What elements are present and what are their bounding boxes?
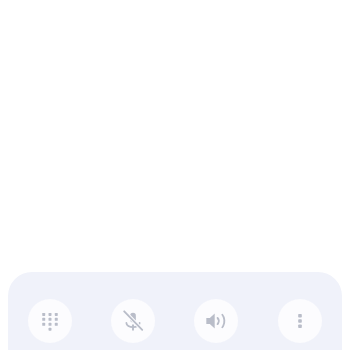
button[interactable]: More options (278, 299, 322, 343)
button[interactable]: Dialpad (28, 299, 72, 343)
button[interactable]: Mute microphone (111, 299, 155, 343)
button[interactable]: Speaker (194, 299, 238, 343)
